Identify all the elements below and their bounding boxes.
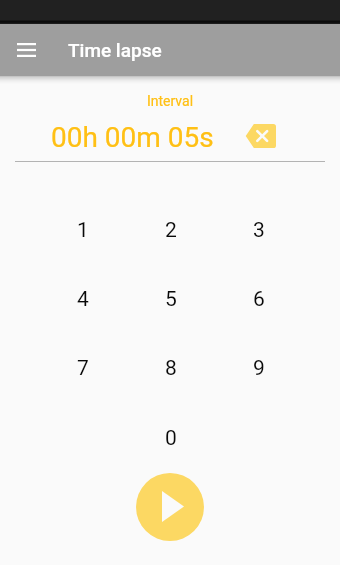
staticText: 1 <box>77 218 89 243</box>
staticText: 3 <box>253 218 265 243</box>
button[interactable]: 5 <box>141 273 201 325</box>
staticText: Time lapse <box>68 39 162 61</box>
staticText: 8 <box>165 356 177 381</box>
staticText: 6 <box>253 287 265 312</box>
staticText: 0 <box>165 426 177 451</box>
staticText: 4 <box>77 287 89 312</box>
button[interactable]: Start <box>136 473 204 541</box>
staticText: 7 <box>77 356 89 381</box>
button[interactable]: 1 <box>53 204 113 256</box>
staticText: 00h 00m 05s <box>51 121 214 154</box>
button[interactable]: 3 <box>229 204 289 256</box>
button[interactable]: 4 <box>53 273 113 325</box>
staticText: Interval <box>0 93 340 109</box>
staticText: 2 <box>165 218 177 243</box>
button[interactable]: 0 <box>141 412 201 464</box>
button[interactable]: 2 <box>141 204 201 256</box>
button[interactable]: Backspace <box>238 114 282 158</box>
button[interactable]: 9 <box>229 342 289 394</box>
button[interactable]: 6 <box>229 273 289 325</box>
button[interactable]: 7 <box>53 342 113 394</box>
button[interactable]: 8 <box>141 342 201 394</box>
staticText: 9 <box>253 356 265 381</box>
staticText: 5 <box>165 287 177 312</box>
button[interactable]: Menu <box>2 26 50 74</box>
